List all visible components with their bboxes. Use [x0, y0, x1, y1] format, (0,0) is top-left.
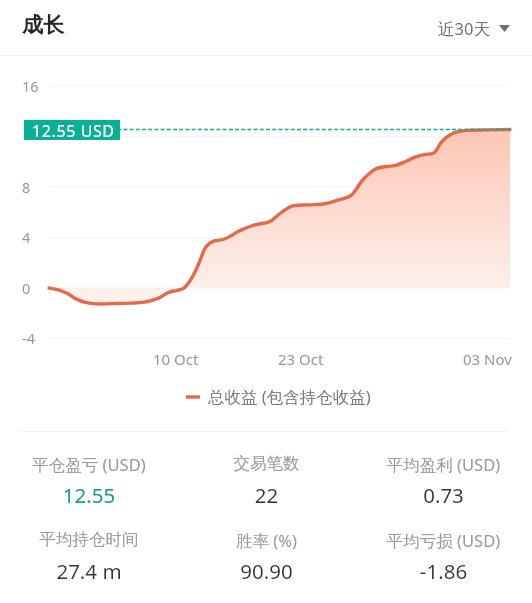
- staticText: 成长: [22, 12, 64, 38]
- button[interactable]: 胜率 (%): [178, 519, 355, 595]
- staticText: 交易笔数: [178, 453, 355, 474]
- staticText: 90.90: [178, 557, 355, 585]
- staticText: 12.55: [0, 481, 178, 509]
- staticText: 23 Oct: [278, 349, 324, 369]
- staticText: 平均持仓时间: [0, 529, 178, 550]
- button[interactable]: 平均盈利 (USD): [355, 443, 532, 519]
- staticText: 10 Oct: [153, 349, 199, 369]
- staticText: 03 Nov: [463, 349, 512, 369]
- button[interactable]: 平均持仓时间: [0, 519, 178, 595]
- staticText: 胜率 (%): [178, 529, 355, 552]
- staticText: 0: [22, 278, 31, 298]
- staticText: 近30天: [438, 17, 490, 40]
- staticText: 12.55 USD: [32, 120, 115, 140]
- button[interactable]: 近30天: [422, 7, 532, 50]
- staticText: 平均盈利 (USD): [355, 453, 532, 476]
- button[interactable]: 平仓盈亏 (USD): [0, 443, 178, 519]
- button[interactable]: 交易笔数: [178, 443, 355, 519]
- staticText: 4: [22, 227, 31, 247]
- staticText: 27.4 m: [0, 557, 178, 585]
- staticText: -1.86: [355, 557, 532, 585]
- staticText: -4: [22, 328, 35, 348]
- staticText: 平仓盈亏 (USD): [0, 453, 178, 476]
- staticText: 总收益 (包含持仓收益): [208, 385, 371, 408]
- other: Change date range: [499, 25, 510, 32]
- staticText: 0.73: [355, 481, 532, 509]
- staticText: 平均亏损 (USD): [355, 529, 532, 552]
- staticText: 8: [22, 177, 31, 197]
- staticText: 16: [22, 76, 39, 96]
- button[interactable]: 平均亏损 (USD): [355, 519, 532, 595]
- staticText: 22: [178, 481, 355, 509]
